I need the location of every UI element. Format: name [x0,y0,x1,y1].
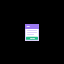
staticText: Upgrade to Pro [30,38,35,39]
staticText: Inbox [27,26,30,27]
button[interactable]: Trip photos [27,34,37,35]
button[interactable]: Search [37,25,39,27]
button[interactable]: Upgrade to Pro [26,36,38,40]
staticText: Trip photos [27,34,30,35]
staticText: Design review [27,30,30,31]
staticText: Weekly sync [27,32,30,33]
button[interactable]: Menu [25,25,27,27]
